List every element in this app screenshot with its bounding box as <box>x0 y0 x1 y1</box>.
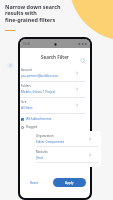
staticText: Apply <box>65 181 74 185</box>
button[interactable]: Organization <box>36 131 99 147</box>
staticText: 10:30 <box>23 42 31 46</box>
staticText: Editor Components <box>36 140 65 144</box>
button[interactable]: Search <box>80 58 86 64</box>
staticText: Reset <box>30 181 39 185</box>
button[interactable]: Apply <box>53 178 86 187</box>
staticText: With Attachments <box>26 117 52 121</box>
staticText: JUnit <box>36 156 43 160</box>
button[interactable]: With Attachments <box>21 117 85 121</box>
staticText: Modules <box>36 150 48 154</box>
button[interactable]: Folders <box>21 82 85 98</box>
staticText: Folders <box>21 84 31 88</box>
staticText: Narrow down search results with fine-gra… <box>5 3 61 24</box>
staticText: Search Filter <box>41 54 69 60</box>
staticText: Account <box>21 68 32 72</box>
button[interactable]: Modules <box>36 147 99 163</box>
staticText: Size <box>21 100 27 104</box>
staticText: Flagged <box>26 125 38 129</box>
button[interactable]: Flagged <box>21 125 85 129</box>
button[interactable]: Reset <box>28 179 41 187</box>
staticText: Organization <box>36 134 54 138</box>
button[interactable]: Size <box>21 98 85 114</box>
staticText: All Sizes <box>21 106 33 110</box>
button[interactable]: Account <box>21 66 85 82</box>
staticText: Mobile, Inbox+1 Project <box>21 90 56 94</box>
staticText: you.person@buildkx.com <box>21 74 58 78</box>
